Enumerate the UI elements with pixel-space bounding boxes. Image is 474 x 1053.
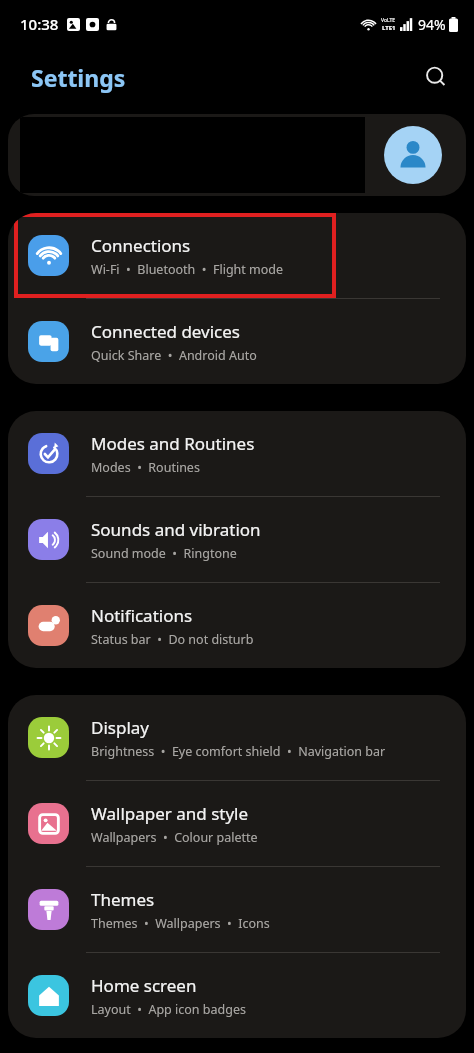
button[interactable]: Connections <box>8 213 466 298</box>
staticText: Wallpapers • Colour palette <box>91 829 258 846</box>
button[interactable]: Connected devices <box>8 299 466 384</box>
staticText: Modes and Routines <box>91 432 255 455</box>
button[interactable]: Modes and Routines <box>8 411 466 496</box>
button[interactable]: Themes <box>8 867 466 952</box>
staticText: Display <box>91 716 149 739</box>
staticText: Connected devices <box>91 320 241 343</box>
staticText: Settings <box>31 62 126 93</box>
staticText: Wi-Fi • Bluetooth • Flight mode <box>91 261 284 278</box>
button[interactable]: Display <box>8 695 466 780</box>
staticText: Home screen <box>91 974 197 997</box>
staticText: Wallpaper and style <box>91 802 249 825</box>
staticText: Themes <box>91 888 155 911</box>
staticText: LTE1 <box>382 24 396 32</box>
staticText: 94% <box>418 15 446 34</box>
staticText: Connections <box>91 234 191 257</box>
button[interactable]: Home screen <box>8 953 466 1038</box>
staticText: Notifications <box>91 604 193 627</box>
staticText: Sounds and vibration <box>91 518 261 541</box>
button[interactable] <box>8 114 466 196</box>
staticText: Modes • Routines <box>91 459 200 476</box>
button[interactable]: Search <box>420 61 452 93</box>
staticText: VoLTE <box>381 17 396 24</box>
button[interactable]: Sounds and vibration <box>8 497 466 582</box>
staticText: Quick Share • Android Auto <box>91 347 257 364</box>
staticText: Status bar • Do not disturb <box>91 631 254 648</box>
button[interactable]: Notifications <box>8 583 466 668</box>
button[interactable]: Wallpaper and style <box>8 781 466 866</box>
staticText: Layout • App icon badges <box>91 1001 246 1018</box>
staticText: Sound mode • Ringtone <box>91 545 237 562</box>
staticText: Brightness • Eye comfort shield • Naviga… <box>91 743 386 760</box>
staticText: Themes • Wallpapers • Icons <box>91 915 270 932</box>
staticText: 10:38 <box>20 14 59 34</box>
